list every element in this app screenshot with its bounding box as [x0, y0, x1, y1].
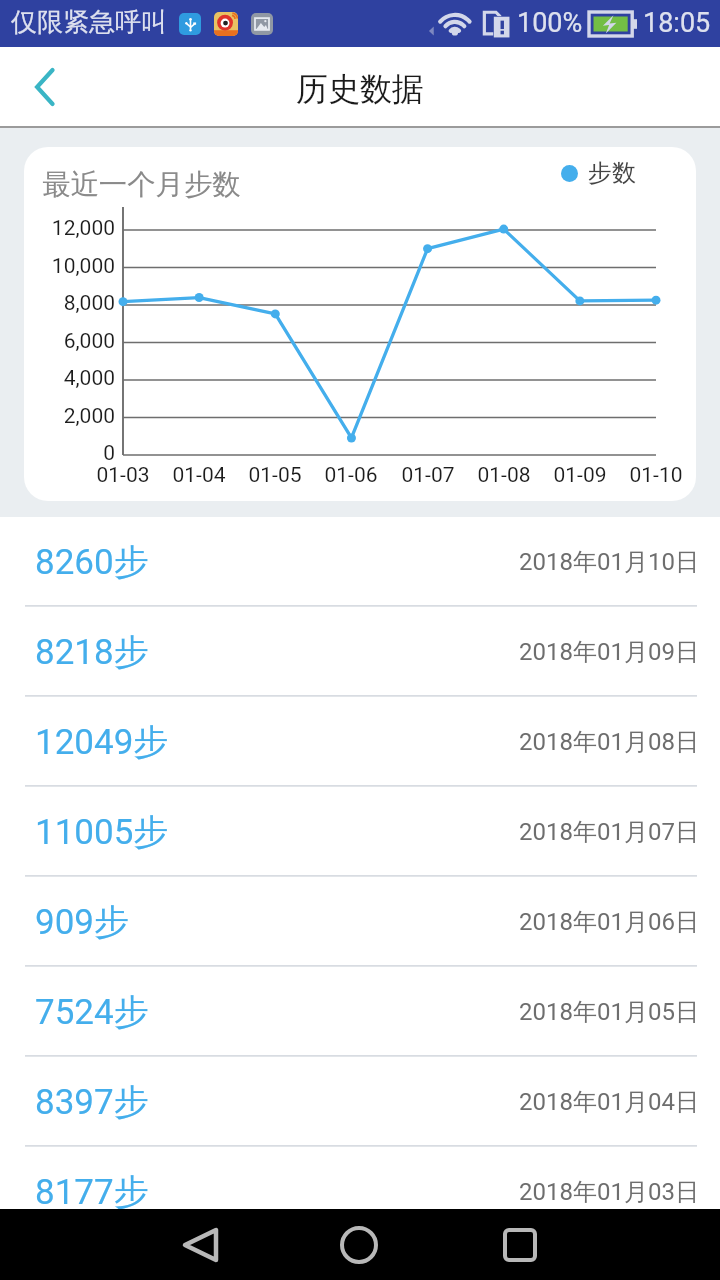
staticText: 8260步	[35, 540, 149, 584]
button[interactable]: 8177步	[0, 1147, 720, 1237]
button[interactable]: 8397步	[0, 1057, 720, 1147]
button[interactable]: Recents	[486, 1211, 554, 1279]
staticText: 7524步	[35, 990, 149, 1034]
staticText: 01-08	[459, 463, 549, 488]
button[interactable]: Back	[166, 1211, 234, 1279]
staticText: 历史数据	[296, 69, 424, 109]
staticText: 6,000	[24, 329, 115, 354]
staticText: 12049步	[35, 720, 169, 764]
staticText: 2018年01月08日	[519, 727, 699, 757]
staticText: 11005步	[35, 810, 169, 854]
staticText: 18:05	[643, 7, 711, 39]
staticText: 0	[24, 441, 115, 466]
staticText: 最近一个月步数	[42, 167, 241, 203]
staticText: 2018年01月07日	[519, 817, 699, 847]
staticText: 01-09	[535, 463, 625, 488]
button[interactable]: Back	[9, 51, 81, 123]
staticText: 步数	[588, 158, 636, 188]
staticText: 8218步	[35, 630, 149, 674]
button[interactable]: 11005步	[0, 787, 720, 877]
staticText: 仅限紧急呼叫	[11, 6, 167, 39]
staticText: 10,000	[24, 254, 115, 279]
staticText: 12,000	[24, 216, 115, 241]
button[interactable]: 909步	[0, 877, 720, 967]
staticText: 909步	[35, 900, 130, 944]
button[interactable]: 12049步	[0, 697, 720, 787]
staticText: 4,000	[24, 366, 115, 391]
staticText: 01-05	[230, 463, 320, 488]
staticText: 2,000	[24, 404, 115, 429]
button[interactable]: Home	[325, 1211, 393, 1279]
staticText: 2018年01月10日	[519, 547, 699, 577]
button[interactable]: 8260步	[0, 517, 720, 607]
staticText: 01-10	[611, 463, 696, 488]
staticText: 8397步	[35, 1080, 149, 1124]
staticText: 2018年01月04日	[519, 1087, 699, 1117]
staticText: 2018年01月03日	[519, 1177, 699, 1207]
staticText: 2018年01月06日	[519, 907, 699, 937]
staticText: 2018年01月09日	[519, 637, 699, 667]
staticText: 100%	[517, 7, 583, 39]
button[interactable]: 7524步	[0, 967, 720, 1057]
staticText: 8177步	[35, 1170, 149, 1214]
button[interactable]: 8218步	[0, 607, 720, 697]
staticText: 2018年01月05日	[519, 997, 699, 1027]
staticText: 01-03	[78, 463, 168, 488]
staticText: 01-07	[383, 463, 473, 488]
staticText: 01-04	[154, 463, 244, 488]
staticText: 8,000	[24, 291, 115, 316]
staticText: 01-06	[306, 463, 396, 488]
